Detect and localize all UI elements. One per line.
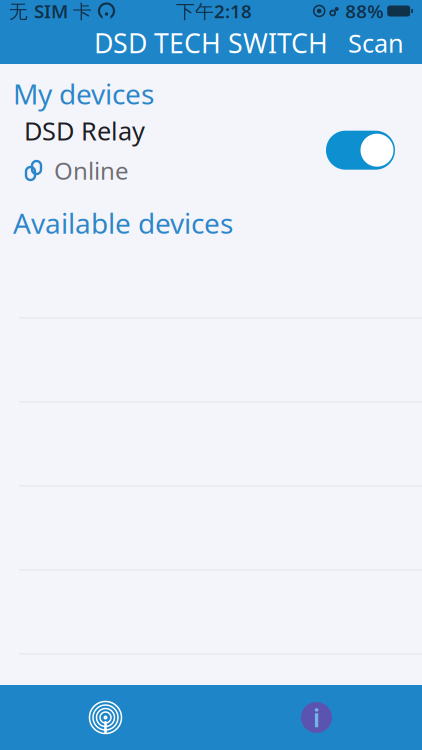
staticText: DSD TECH SWITCH [94, 25, 328, 61]
staticText: DSD Relay [24, 114, 145, 147]
button[interactable]: Scan [0, 685, 211, 750]
staticText: Scan [348, 26, 404, 60]
button[interactable]: Scan [334, 17, 418, 69]
button[interactable]: DSD Relay switch, on [326, 131, 395, 170]
staticText: 下午2:18 [176, 0, 252, 23]
staticText: Available devices [13, 204, 233, 241]
staticText: i [313, 701, 320, 734]
button[interactable]: Information [211, 685, 422, 750]
staticText: Online [54, 155, 129, 186]
button[interactable]: DSD Relay [0, 118, 422, 182]
staticText: My devices [13, 75, 154, 112]
staticText: 88% [345, 0, 383, 23]
staticText: 无 SIM 卡 [9, 0, 92, 23]
